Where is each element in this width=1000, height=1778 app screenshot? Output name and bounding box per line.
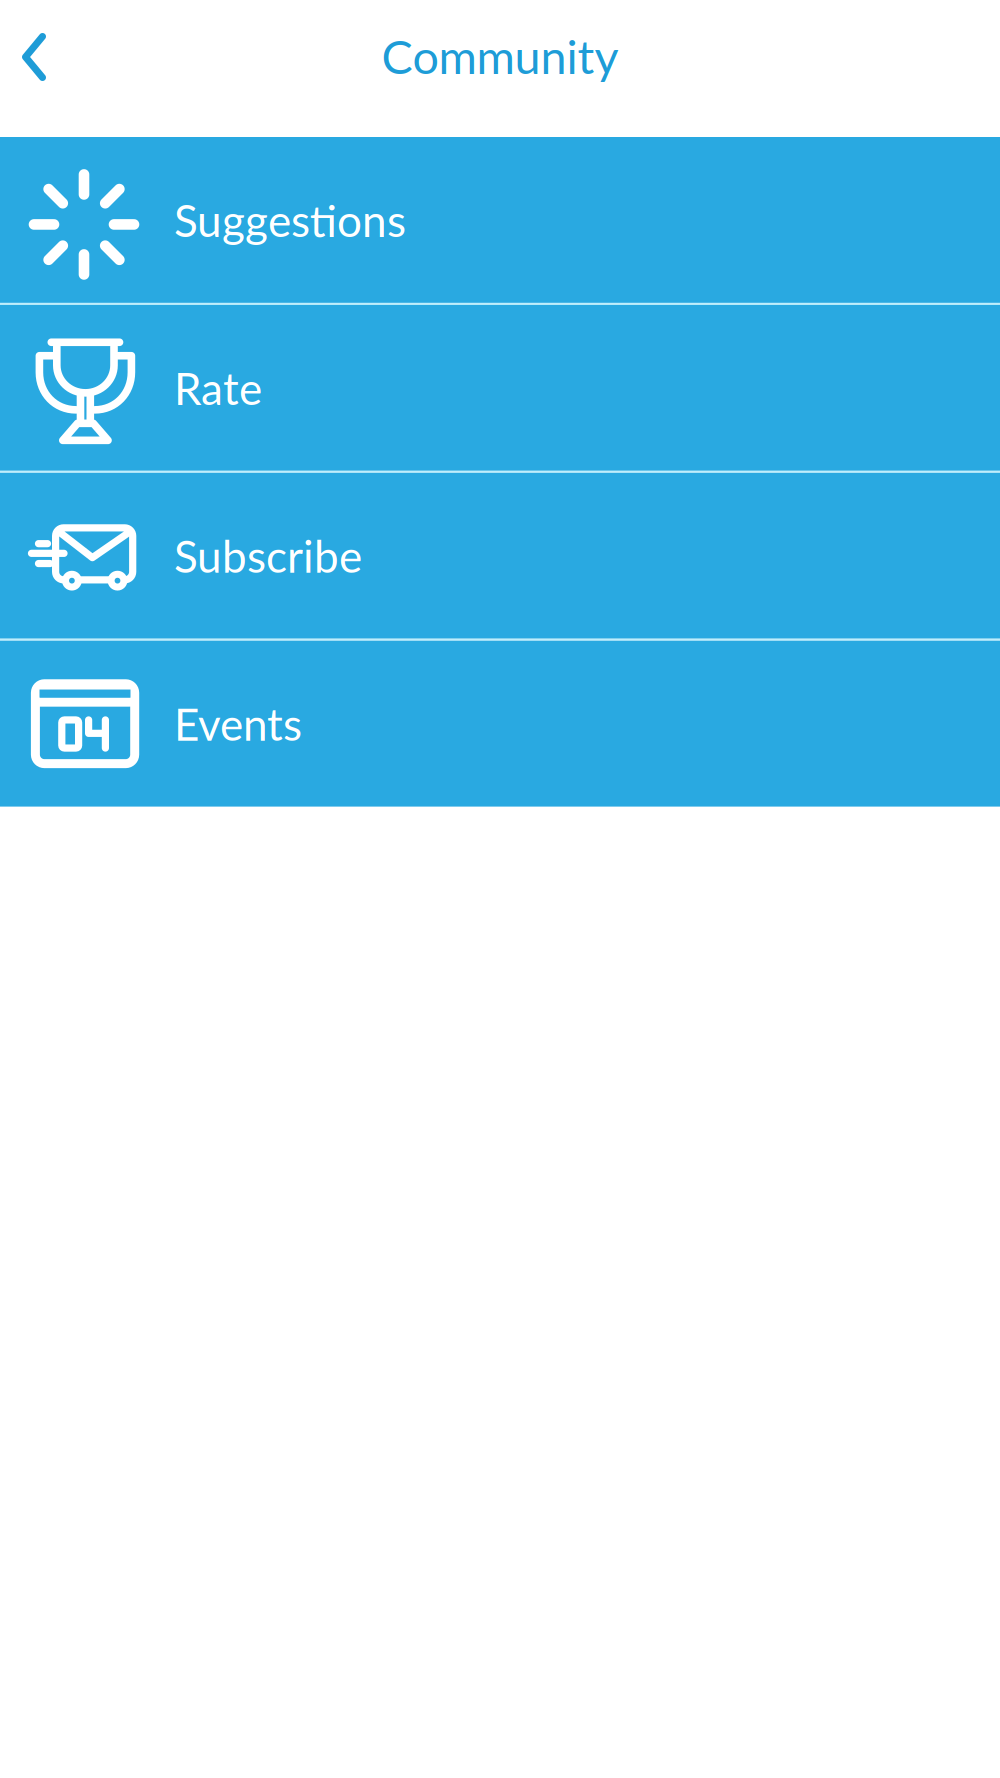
button[interactable]: Events (0, 641, 1000, 807)
staticText: Rate (174, 361, 262, 414)
button[interactable]: Suggestions (0, 137, 1000, 303)
staticText: Events (174, 697, 302, 750)
button[interactable]: Back (0, 0, 58, 89)
staticText: Community (381, 28, 618, 84)
staticText: Suggestions (174, 194, 406, 246)
button[interactable]: Subscribe (0, 473, 1000, 639)
staticText: Subscribe (174, 529, 362, 582)
button[interactable]: Rate (0, 305, 1000, 471)
